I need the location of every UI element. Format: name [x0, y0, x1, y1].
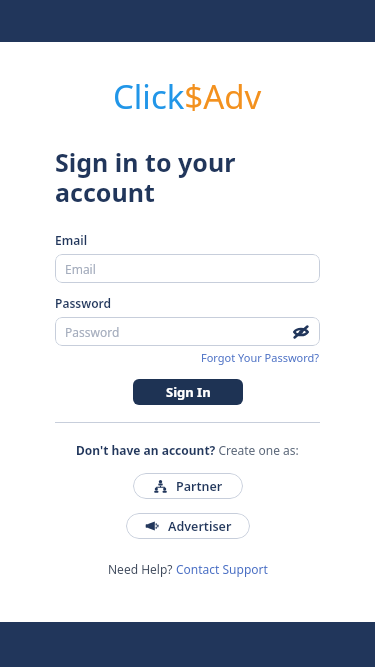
staticText: Forgot Your Password?: [201, 350, 320, 365]
button[interactable]: Contact Support: [176, 561, 268, 577]
button[interactable]: Advertiser: [126, 513, 250, 539]
staticText: Don't have an account? Create one as:: [76, 442, 299, 458]
staticText: Contact Support: [176, 561, 268, 577]
button[interactable]: Password: [55, 317, 320, 346]
staticText: Password: [65, 324, 292, 340]
button[interactable]: Show password: [292, 323, 310, 341]
staticText: Email: [55, 232, 88, 248]
button[interactable]: Partner: [133, 473, 243, 499]
staticText: Partner: [176, 478, 223, 495]
staticText: Sign In: [166, 383, 211, 401]
button[interactable]: Forgot Your Password?: [201, 350, 320, 365]
staticText: Sign in to your account: [55, 145, 320, 210]
staticText: Click$Adv: [113, 74, 262, 119]
staticText: Advertiser: [168, 518, 232, 535]
staticText: Email: [65, 261, 310, 277]
staticText: Password: [55, 295, 112, 311]
staticText: Need Help?: [108, 561, 176, 577]
button[interactable]: Sign In: [133, 379, 243, 405]
button[interactable]: Email: [55, 254, 320, 283]
